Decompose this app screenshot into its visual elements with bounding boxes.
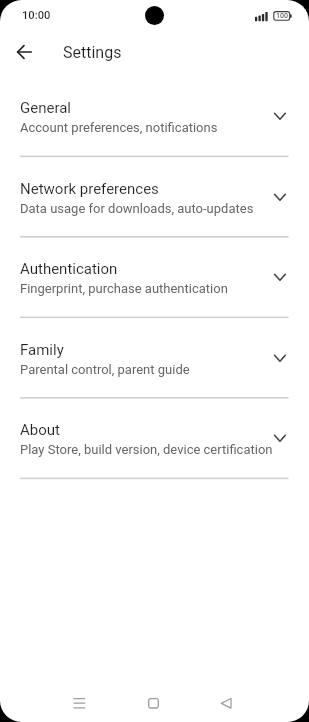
button[interactable]: General (0, 96, 309, 177)
staticText: 10:00 (22, 9, 51, 22)
staticText: Family (20, 341, 64, 359)
button[interactable]: Navigate up (9, 36, 40, 67)
button[interactable]: Family (0, 338, 309, 419)
staticText: Data usage for downloads, auto-updates (20, 201, 254, 216)
button[interactable]: About (0, 418, 309, 499)
button[interactable]: Recent apps (61, 685, 97, 721)
staticText: About (20, 421, 60, 439)
staticText: 100 (276, 11, 289, 19)
button[interactable]: Network preferences (0, 177, 309, 258)
staticText: Fingerprint, purchase authentication (20, 281, 228, 296)
staticText: Authentication (20, 260, 118, 278)
button[interactable]: Back (208, 685, 244, 721)
staticText: Play Store, build version, device certif… (20, 442, 273, 457)
staticText: Settings (63, 43, 122, 62)
button[interactable]: Home (135, 685, 171, 721)
staticText: Network preferences (20, 180, 159, 198)
staticText: Account preferences, notifications (20, 120, 218, 135)
button[interactable]: Authentication (0, 257, 309, 338)
staticText: General (20, 99, 72, 117)
staticText: Parental control, parent guide (20, 362, 190, 377)
